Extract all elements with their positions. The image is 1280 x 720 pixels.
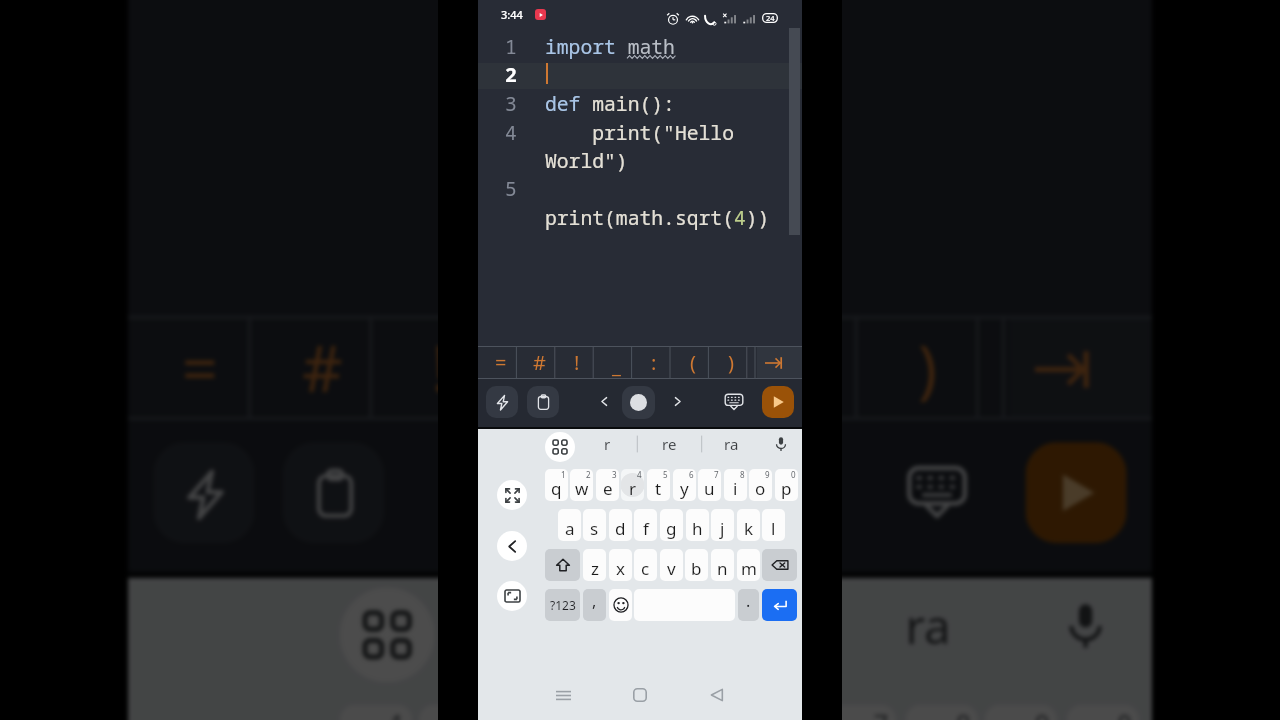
button[interactable]: Back — [699, 677, 735, 713]
staticText: ?123 — [550, 597, 576, 613]
button[interactable]: u — [698, 469, 721, 501]
button[interactable]: Paste — [283, 442, 384, 543]
button[interactable]: Emoji — [609, 589, 632, 621]
button[interactable]: Run — [762, 386, 794, 418]
button[interactable]: Quick actions — [153, 442, 254, 543]
button[interactable]: v — [660, 549, 683, 581]
button[interactable]: Quick actions — [486, 386, 518, 418]
button[interactable]: g — [660, 509, 683, 541]
staticText: b — [691, 557, 702, 580]
button[interactable]: ) — [867, 316, 988, 420]
button[interactable]: b — [685, 549, 708, 581]
button[interactable]: re — [681, 578, 782, 673]
button[interactable]: m — [737, 549, 760, 581]
staticText: o — [755, 477, 766, 500]
button[interactable]: ) — [712, 346, 750, 379]
button[interactable]: Cursor pad — [622, 386, 655, 419]
button[interactable]: a — [558, 509, 581, 541]
button[interactable]: Move cursor right — [663, 387, 691, 415]
button[interactable]: q — [340, 704, 412, 720]
button[interactable]: ! — [558, 346, 596, 379]
button[interactable]: x — [609, 549, 632, 581]
button[interactable]: o — [749, 469, 772, 501]
button[interactable]: l — [762, 509, 785, 541]
button[interactable]: _ — [597, 346, 635, 379]
button[interactable]: Resize keyboard — [497, 480, 527, 510]
button[interactable]: Move cursor left — [482, 445, 570, 534]
button[interactable]: u — [823, 704, 896, 720]
button[interactable]: ( — [674, 346, 712, 379]
button[interactable]: d — [609, 509, 632, 541]
button[interactable]: Backspace — [762, 549, 797, 581]
button[interactable]: j — [711, 509, 734, 541]
button[interactable]: = — [482, 346, 520, 379]
button[interactable]: Period — [738, 589, 759, 621]
button[interactable]: r — [621, 469, 644, 501]
button[interactable]: : — [635, 346, 673, 379]
button[interactable]: r — [591, 429, 623, 459]
button[interactable]: ra — [715, 429, 747, 459]
button[interactable]: Paste — [527, 386, 559, 418]
button[interactable]: Symbols — [545, 589, 580, 621]
button[interactable]: ! — [381, 316, 501, 420]
button[interactable]: : — [624, 316, 744, 420]
staticText: 9 — [765, 469, 770, 480]
staticText: u — [704, 477, 715, 500]
button[interactable]: i — [905, 704, 978, 720]
button[interactable]: r — [485, 578, 586, 673]
button[interactable]: q — [545, 469, 568, 501]
staticText: # — [533, 349, 546, 376]
button[interactable]: Move cursor left — [590, 387, 618, 415]
button[interactable]: Move cursor right — [713, 445, 801, 534]
button[interactable]: Keyboard toolbar — [340, 587, 435, 682]
button[interactable]: Floating keyboard — [497, 581, 527, 611]
button[interactable]: y — [673, 469, 696, 501]
button[interactable]: Comma — [583, 589, 606, 621]
button[interactable]: Cursor pad — [583, 442, 687, 546]
button[interactable]: w — [570, 469, 593, 501]
button[interactable]: ( — [747, 316, 867, 420]
button[interactable]: Home — [622, 677, 658, 713]
button[interactable]: = — [141, 316, 261, 420]
button[interactable]: Keyboard toolbar — [545, 432, 575, 462]
button[interactable]: Back — [497, 531, 527, 561]
button[interactable]: y — [744, 704, 817, 720]
button[interactable]: Voice input — [770, 433, 791, 454]
button[interactable]: k — [737, 509, 760, 541]
button[interactable]: re — [653, 429, 685, 459]
staticText: k — [744, 517, 754, 540]
button[interactable]: # — [520, 346, 558, 379]
button[interactable]: # — [261, 316, 381, 420]
button[interactable]: Recent apps — [545, 677, 581, 713]
button[interactable]: c — [634, 549, 657, 581]
button[interactable]: Hide keyboard — [719, 386, 749, 416]
button[interactable]: p — [1067, 704, 1139, 720]
button[interactable]: Run — [1025, 442, 1127, 543]
button[interactable]: Voice input — [1051, 591, 1117, 657]
button[interactable]: Tab — [757, 346, 802, 379]
button[interactable]: n — [711, 549, 734, 581]
button[interactable]: _ — [504, 316, 624, 420]
button[interactable]: h — [686, 509, 709, 541]
staticText: 6 — [795, 704, 811, 720]
staticText: v — [667, 557, 676, 580]
button[interactable]: f — [634, 509, 657, 541]
button[interactable]: Enter — [762, 589, 797, 621]
button[interactable]: e — [596, 469, 619, 501]
button[interactable]: p — [775, 469, 798, 501]
staticText: 6 — [689, 469, 694, 480]
button[interactable]: s — [583, 509, 606, 541]
button[interactable]: z — [583, 549, 606, 581]
button[interactable]: ra — [877, 578, 978, 673]
button[interactable]: Shift — [545, 549, 580, 581]
button[interactable]: t — [647, 469, 670, 501]
button[interactable]: i — [724, 469, 747, 501]
button[interactable]: o — [984, 704, 1057, 720]
button[interactable]: w — [419, 704, 491, 720]
button[interactable]: Tab — [1010, 316, 1152, 420]
button[interactable]: Hide keyboard — [890, 442, 984, 537]
